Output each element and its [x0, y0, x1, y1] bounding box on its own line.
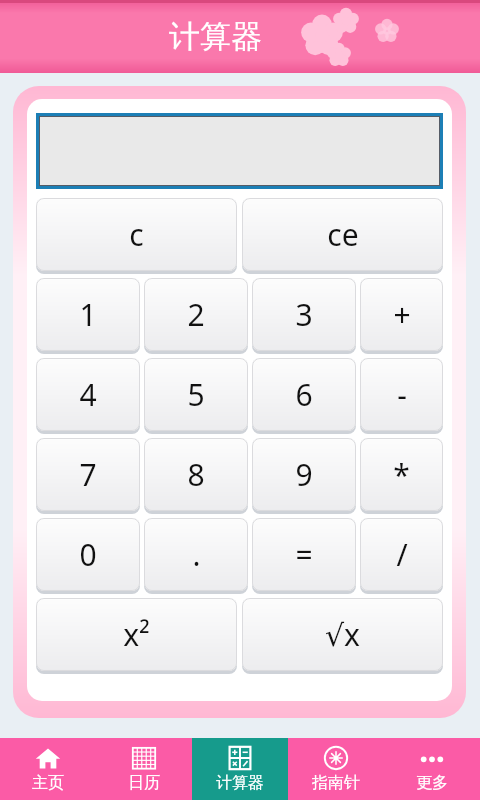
staticText: 更多 — [416, 773, 448, 793]
staticText: 计算器 — [216, 773, 264, 793]
staticText: 1 — [79, 294, 97, 335]
button[interactable]: 更多 — [384, 738, 480, 800]
button[interactable]: x² — [36, 598, 237, 671]
button[interactable]: - — [360, 358, 443, 431]
button[interactable]: 1 — [36, 278, 140, 351]
button[interactable]: 指南针 — [288, 738, 384, 800]
staticText: . — [192, 534, 201, 575]
staticText: √x — [325, 614, 360, 655]
button[interactable]: ce — [242, 198, 443, 271]
staticText: 9 — [295, 454, 313, 495]
staticText: - — [397, 374, 407, 415]
staticText: 0 — [79, 534, 97, 575]
button[interactable]: 7 — [36, 438, 140, 511]
button[interactable]: 主页 — [0, 738, 96, 800]
button[interactable]: / — [360, 518, 443, 591]
button[interactable]: 4 — [36, 358, 140, 431]
staticText: 6 — [295, 374, 313, 415]
button[interactable]: √x — [242, 598, 443, 671]
staticText: 日历 — [128, 773, 160, 793]
staticText: 7 — [79, 454, 97, 495]
button[interactable]: 8 — [144, 438, 248, 511]
button[interactable]: 6 — [252, 358, 356, 431]
staticText: 5 — [187, 374, 205, 415]
button[interactable]: 2 — [144, 278, 248, 351]
staticText: 主页 — [32, 773, 64, 793]
staticText: 计算器 — [169, 17, 262, 56]
button[interactable]: . — [144, 518, 248, 591]
staticText: 2 — [187, 294, 205, 335]
button[interactable]: + — [360, 278, 443, 351]
staticText: 8 — [187, 454, 205, 495]
button[interactable]: * — [360, 438, 443, 511]
button[interactable]: 日历 — [96, 738, 192, 800]
staticText: * — [393, 454, 410, 495]
button[interactable]: c — [36, 198, 237, 271]
button[interactable]: 3 — [252, 278, 356, 351]
staticText: = — [295, 534, 313, 575]
button[interactable]: 0 — [36, 518, 140, 591]
staticText: ce — [327, 214, 359, 255]
staticText: 4 — [79, 374, 97, 415]
button[interactable]: 计算器 — [192, 738, 288, 800]
staticText: 3 — [295, 294, 313, 335]
staticText: 指南针 — [312, 773, 360, 793]
staticText: + — [393, 294, 411, 335]
staticText: x² — [123, 614, 150, 655]
staticText: / — [396, 534, 408, 575]
button[interactable]: = — [252, 518, 356, 591]
button[interactable]: 5 — [144, 358, 248, 431]
button[interactable]: 9 — [252, 438, 356, 511]
staticText: c — [129, 214, 144, 255]
